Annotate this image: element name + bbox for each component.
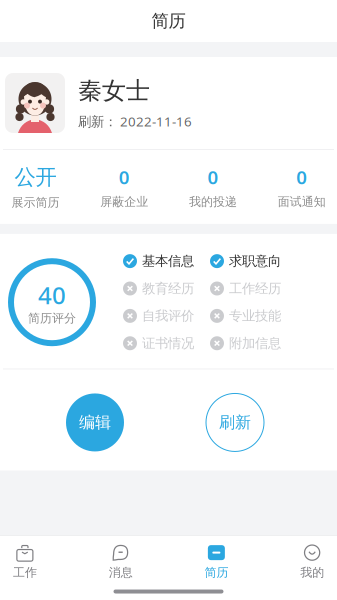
button[interactable]: 公开 <box>0 164 80 210</box>
staticText: 公开 <box>14 164 56 190</box>
staticText: 我的 <box>300 565 324 580</box>
button[interactable]: 求职意向 <box>210 253 297 269</box>
staticText: 面试通知 <box>278 194 326 209</box>
button[interactable]: 工作经历 <box>210 280 297 297</box>
button[interactable]: 自我评价 <box>123 308 210 324</box>
button[interactable]: 基本信息 <box>123 253 210 269</box>
staticText: 自我评价 <box>142 308 194 324</box>
staticText: 基本信息 <box>142 253 194 269</box>
staticText: 秦女士 <box>78 76 150 105</box>
staticText: 40 <box>38 279 66 311</box>
button[interactable]: 消息 <box>73 539 169 584</box>
button[interactable]: 0 <box>257 165 337 209</box>
button[interactable]: 简历 <box>168 539 264 584</box>
staticText: 证书情况 <box>142 335 194 351</box>
staticText: 展示简历 <box>11 195 59 210</box>
button[interactable]: 编辑 <box>66 393 124 451</box>
staticText: 简历 <box>151 10 185 32</box>
button[interactable]: 教育经历 <box>123 280 210 297</box>
staticText: 0 <box>296 165 307 189</box>
button[interactable]: 我的 <box>264 539 337 584</box>
button[interactable]: 0 <box>80 165 169 209</box>
staticText: 简历 <box>204 565 228 580</box>
staticText: 我的投递 <box>189 194 237 209</box>
staticText: 教育经历 <box>142 280 194 297</box>
staticText: 屏蔽企业 <box>100 194 148 209</box>
staticText: 编辑 <box>79 413 111 432</box>
button[interactable]: 0 <box>168 165 257 209</box>
button[interactable]: 附加信息 <box>210 335 297 351</box>
staticText: 0 <box>207 165 218 189</box>
staticText: 刷新 <box>219 413 251 432</box>
staticText: 工作经历 <box>229 280 281 297</box>
button[interactable]: 证书情况 <box>123 335 210 351</box>
button[interactable]: 工作 <box>0 539 73 584</box>
staticText: 工作 <box>13 565 37 580</box>
staticText: 0 <box>119 165 130 189</box>
staticText: 求职意向 <box>229 253 281 269</box>
staticText: 消息 <box>109 565 133 580</box>
button[interactable]: 刷新 <box>206 393 264 451</box>
staticText: 专业技能 <box>229 308 281 324</box>
staticText: 刷新： 2022-11-16 <box>78 112 192 130</box>
button[interactable]: 专业技能 <box>210 308 297 324</box>
staticText: 附加信息 <box>229 335 281 351</box>
staticText: 简历评分 <box>28 311 76 325</box>
